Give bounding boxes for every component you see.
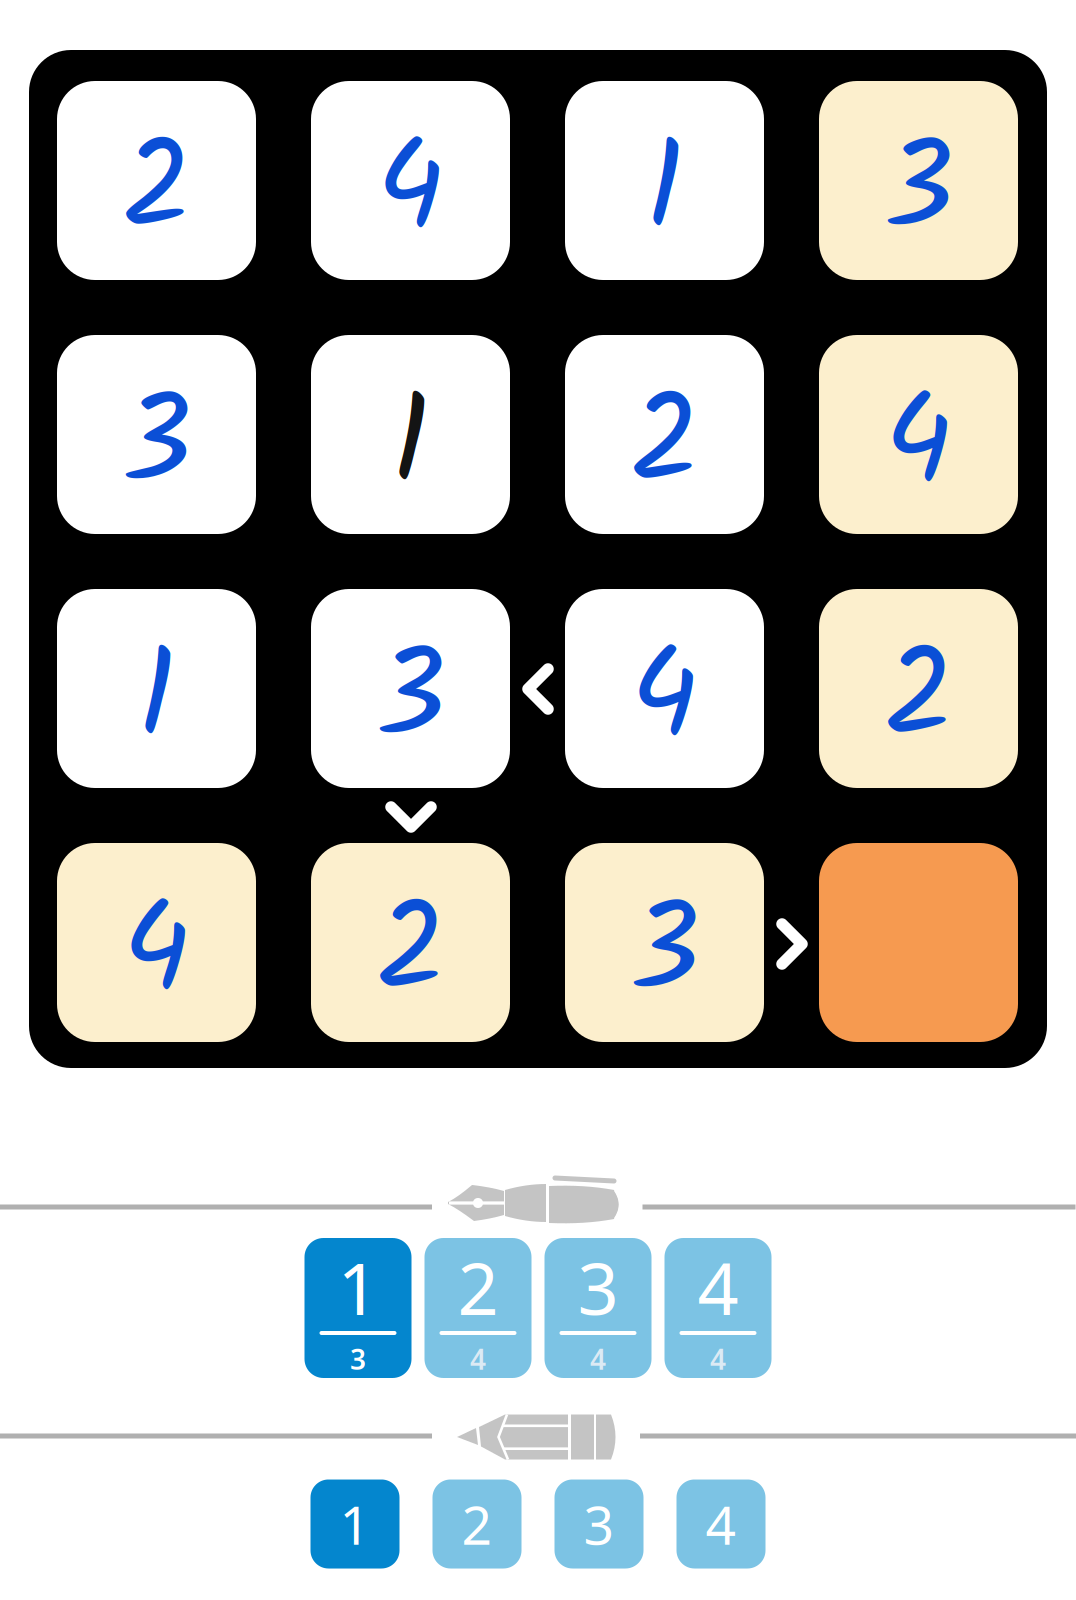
- staticText: 3: [577, 1239, 618, 1335]
- staticText: 4: [376, 96, 444, 291]
- staticText: 2: [461, 1489, 492, 1559]
- staticText: 2: [883, 604, 954, 799]
- button[interactable]: 2: [819, 589, 1018, 788]
- button[interactable]: 1: [311, 335, 510, 534]
- button[interactable]: 3: [819, 81, 1018, 280]
- button[interactable]: [819, 843, 1018, 1042]
- staticText: 2: [457, 1239, 498, 1335]
- button[interactable]: 4: [311, 81, 510, 280]
- button[interactable]: 1: [565, 81, 764, 280]
- button[interactable]: 3: [57, 335, 256, 534]
- staticText: 4: [630, 604, 698, 799]
- button[interactable]: 3: [544, 1238, 651, 1378]
- staticText: 4: [697, 1239, 738, 1335]
- staticText: 3: [375, 604, 445, 799]
- staticText: 3: [629, 858, 699, 1053]
- staticText: 2: [121, 96, 192, 291]
- button[interactable]: 4: [819, 335, 1018, 534]
- staticText: 2: [629, 350, 700, 545]
- button[interactable]: 3: [311, 589, 510, 788]
- staticText: 3: [583, 1489, 614, 1559]
- staticText: 4: [590, 1340, 606, 1378]
- button[interactable]: 2: [311, 843, 510, 1042]
- button[interactable]: 3: [554, 1479, 643, 1568]
- button[interactable]: 4: [676, 1479, 765, 1568]
- staticText: 4: [122, 858, 190, 1053]
- staticText: 4: [710, 1340, 726, 1378]
- staticText: 1: [645, 96, 684, 291]
- staticText: 3: [121, 350, 191, 545]
- button[interactable]: 2: [432, 1479, 521, 1568]
- staticText: 2: [375, 858, 446, 1053]
- staticText: 4: [470, 1340, 486, 1378]
- button[interactable]: 4: [565, 589, 764, 788]
- staticText: 1: [137, 604, 176, 799]
- staticText: 3: [350, 1340, 366, 1378]
- staticText: 1: [391, 350, 430, 545]
- staticText: 3: [883, 96, 953, 291]
- staticText: 1: [337, 1239, 378, 1335]
- button[interactable]: 2: [57, 81, 256, 280]
- button[interactable]: 2: [424, 1238, 531, 1378]
- button[interactable]: 1: [57, 589, 256, 788]
- button[interactable]: 4: [664, 1238, 771, 1378]
- staticText: 4: [705, 1489, 736, 1559]
- staticText: 4: [884, 350, 952, 545]
- button[interactable]: 4: [57, 843, 256, 1042]
- button[interactable]: 1: [310, 1479, 399, 1568]
- button[interactable]: 3: [565, 843, 764, 1042]
- staticText: 1: [339, 1489, 370, 1559]
- button[interactable]: 1: [304, 1238, 411, 1378]
- button[interactable]: 2: [565, 335, 764, 534]
